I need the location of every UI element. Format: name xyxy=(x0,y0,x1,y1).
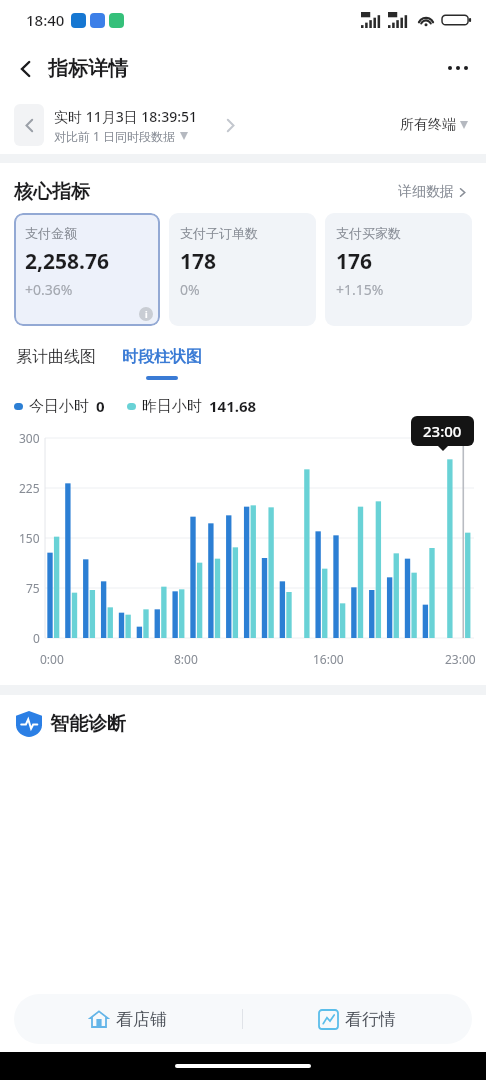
other: Back xyxy=(16,59,36,79)
staticText: 实时 11月3日 18:39:51 xyxy=(54,107,197,126)
staticText: 累计曲线图 xyxy=(16,347,96,367)
staticText: 支付子订单数 xyxy=(180,225,258,241)
staticText: 指标详情 xyxy=(48,56,128,81)
button[interactable]: Previous xyxy=(14,104,44,146)
staticText: 时段柱状图 xyxy=(122,347,202,367)
staticText: 75 xyxy=(26,580,40,596)
staticText: 225 xyxy=(19,480,40,496)
staticText: 支付金额 xyxy=(25,225,77,241)
staticText: 141.68 xyxy=(209,396,257,416)
staticText: 详细数据 xyxy=(398,183,454,201)
staticText: 今日小时 xyxy=(29,397,89,416)
staticText: 昨日小时 xyxy=(142,397,202,416)
staticText: 2,258.76 xyxy=(25,247,109,276)
staticText: 支付买家数 xyxy=(336,225,401,241)
staticText: 23:00 xyxy=(445,651,476,667)
button[interactable]: Next xyxy=(215,104,245,146)
button[interactable]: 累计曲线图 xyxy=(14,344,98,370)
button[interactable]: 实时 11月3日 18:39:51 xyxy=(54,107,197,144)
staticText: 0 xyxy=(96,396,105,416)
button[interactable]: 看行情 xyxy=(243,994,472,1044)
button[interactable]: 支付金额 xyxy=(14,213,160,326)
button[interactable]: 支付买家数 xyxy=(325,213,472,326)
staticText: +0.36% xyxy=(25,280,73,299)
button[interactable]: 支付子订单数 xyxy=(169,213,316,326)
staticText: 0:00 xyxy=(40,651,64,667)
staticText: 300 xyxy=(19,430,40,446)
staticText: 所有终端 xyxy=(400,116,456,134)
staticText: 178 xyxy=(180,247,217,276)
staticText: 看行情 xyxy=(345,1009,396,1030)
button[interactable]: Back xyxy=(0,50,138,87)
staticText: 16:00 xyxy=(313,651,344,667)
button[interactable]: 详细数据 xyxy=(394,179,472,205)
staticText: 对比前 1 日同时段数据 xyxy=(54,128,176,144)
staticText: 智能诊断 xyxy=(50,712,126,736)
staticText: 18:40 xyxy=(26,10,65,30)
staticText: 看店铺 xyxy=(116,1009,167,1030)
staticText: 23:00 xyxy=(423,421,462,441)
button[interactable]: 看店铺 xyxy=(14,994,242,1044)
staticText: 8:00 xyxy=(174,651,198,667)
staticText: 核心指标 xyxy=(14,180,90,204)
staticText: 150 xyxy=(19,530,40,546)
staticText: 0% xyxy=(180,280,200,299)
staticText: 176 xyxy=(336,247,373,276)
staticText: +1.15% xyxy=(336,280,384,299)
button[interactable]: 时段柱状图 xyxy=(120,344,204,380)
staticText: 0 xyxy=(33,630,40,646)
staticText: i xyxy=(145,308,148,320)
button[interactable]: More options xyxy=(430,52,486,84)
button[interactable]: 所有终端 xyxy=(396,112,472,138)
